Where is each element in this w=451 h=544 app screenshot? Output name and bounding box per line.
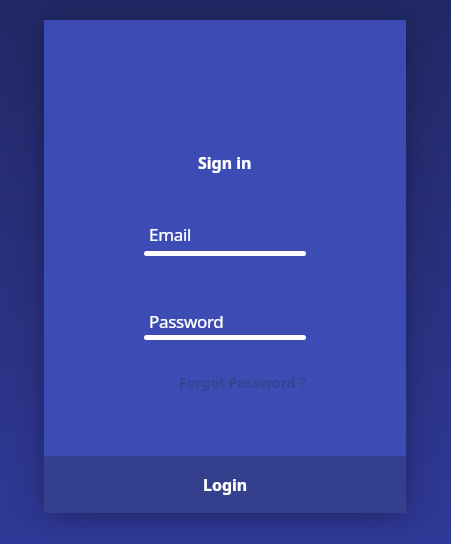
staticText: Login — [203, 474, 248, 496]
staticText: Email — [149, 223, 192, 246]
staticText: Sign in — [198, 152, 252, 174]
staticText: Password — [149, 310, 224, 333]
staticText: Forgot Password ? — [179, 373, 306, 392]
button[interactable]: Login — [44, 456, 406, 513]
button[interactable]: Forgot Password ? — [144, 373, 306, 395]
